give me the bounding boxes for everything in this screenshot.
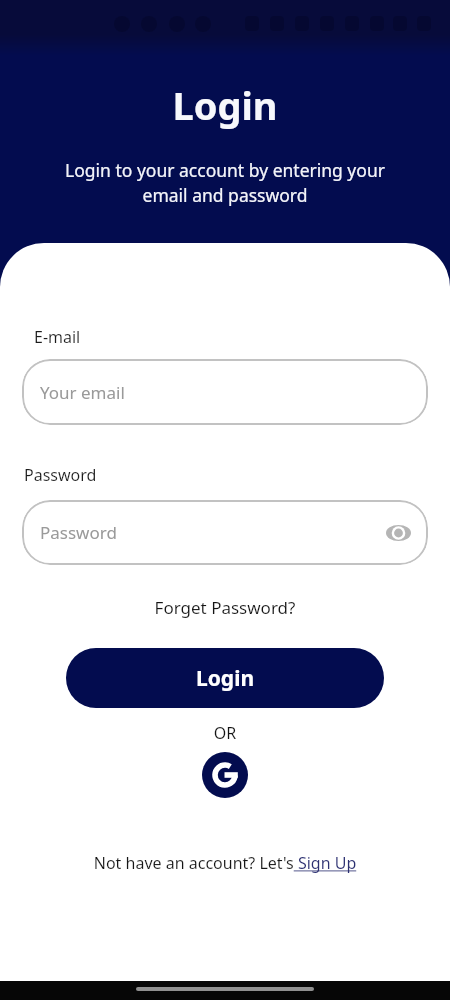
button[interactable] [386,524,410,542]
staticText: OR [0,722,450,744]
staticText: Password [24,464,97,486]
staticText: Login [0,79,450,131]
button[interactable]: Login [66,648,384,708]
staticText: Your email [40,381,125,404]
staticText: E-mail [34,326,81,348]
staticText: Login to your account by entering your e… [0,158,450,208]
button[interactable]: Not have an account? Let's Sign Up [0,852,450,874]
button[interactable]: Your email [22,359,428,425]
staticText: Login [196,664,255,693]
button[interactable] [202,752,248,798]
staticText: Password [40,521,117,544]
button[interactable]: Forget Password? [0,596,450,619]
button[interactable]: Password [22,500,428,565]
